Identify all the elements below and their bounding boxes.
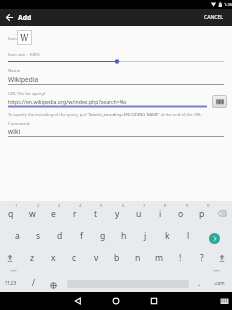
staticText: y — [115, 208, 120, 220]
button[interactable]: a — [7, 229, 27, 243]
button[interactable] — [69, 292, 87, 310]
button[interactable]: ? — [192, 251, 212, 265]
button[interactable] — [0, 55, 232, 67]
staticText: t — [94, 208, 98, 220]
button[interactable]: . — [189, 275, 209, 289]
button[interactable]: ?123 — [0, 275, 23, 289]
button[interactable]: e — [43, 207, 63, 221]
button[interactable] — [3, 9, 17, 26]
button[interactable]: f — [71, 229, 91, 243]
button[interactable]: 1 — [12, 203, 20, 209]
staticText: m — [155, 252, 164, 264]
staticText: l — [187, 230, 190, 242]
button[interactable] — [214, 250, 230, 266]
button[interactable] — [212, 95, 227, 108]
button[interactable]: 5 — [97, 203, 105, 209]
staticText: u — [136, 208, 142, 220]
staticText: URL (%s for query) — [8, 90, 46, 96]
button[interactable]: v — [86, 251, 106, 265]
button[interactable]: / — [23, 275, 43, 289]
staticText: Wikipedia — [8, 75, 39, 84]
button[interactable]: i — [150, 207, 170, 221]
button[interactable]: W — [17, 30, 32, 45]
staticText: 7 — [143, 203, 146, 209]
button[interactable]: .com — [207, 276, 231, 290]
staticText: 9 — [186, 203, 189, 209]
staticText: Name — [8, 67, 21, 73]
button[interactable]: j — [135, 229, 155, 243]
button[interactable]: h — [114, 229, 134, 243]
staticText: To specify the encoding of the query, pu… — [8, 112, 203, 118]
button[interactable]: 7 — [140, 203, 148, 209]
button[interactable]: p — [192, 207, 212, 221]
button[interactable]: x — [43, 251, 63, 265]
staticText: f — [80, 230, 83, 242]
staticText: https://en.wikipedia.org/w/index.php?sea… — [8, 98, 127, 105]
staticText: 1:26 — [224, 2, 232, 8]
staticText: 8 — [164, 203, 167, 209]
button[interactable]: n — [128, 251, 148, 265]
staticText: g — [100, 230, 106, 242]
button[interactable]: t — [86, 207, 106, 221]
button[interactable]: 3 — [55, 203, 63, 209]
staticText: n — [135, 252, 141, 264]
button[interactable]: d — [50, 229, 70, 243]
staticText: 6 — [122, 203, 125, 209]
staticText: i — [159, 208, 162, 220]
button[interactable]: b — [107, 251, 127, 265]
button[interactable]: k — [157, 229, 177, 243]
button[interactable]: o — [171, 207, 191, 221]
staticText: . — [198, 277, 201, 288]
staticText: w — [29, 208, 36, 220]
button[interactable]: w — [22, 207, 42, 221]
button[interactable] — [47, 279, 60, 292]
staticText: Icon — [8, 35, 17, 41]
button[interactable] — [107, 292, 125, 310]
staticText: 1 — [15, 203, 18, 209]
staticText: e — [51, 208, 56, 220]
staticText: p — [199, 208, 205, 220]
staticText: CANCEL — [204, 14, 223, 21]
button[interactable]: r — [65, 207, 85, 221]
staticText: / — [32, 277, 35, 288]
button[interactable]: u — [129, 207, 149, 221]
staticText: 5 — [100, 203, 103, 209]
staticText: x — [51, 252, 56, 264]
staticText: Add — [18, 13, 32, 22]
button[interactable]: 2 — [34, 203, 42, 209]
button[interactable]: ! — [170, 251, 190, 265]
staticText: j — [144, 230, 147, 242]
staticText: Icon size : 100% — [8, 51, 40, 57]
button[interactable]: 9 — [183, 203, 191, 209]
button[interactable]: c — [64, 251, 84, 265]
staticText: h — [121, 230, 127, 242]
staticText: z — [30, 252, 35, 264]
button[interactable]: 6 — [119, 203, 127, 209]
button[interactable]: s — [28, 229, 48, 243]
staticText: ?123 — [5, 279, 17, 286]
button[interactable] — [218, 292, 232, 310]
button[interactable]: CANCEL — [198, 9, 228, 26]
button[interactable]: 8 — [161, 203, 169, 209]
staticText: a — [15, 230, 20, 242]
button[interactable]: g — [93, 229, 113, 243]
staticText: Command: — [8, 120, 31, 126]
button[interactable]: m — [149, 251, 169, 265]
button[interactable] — [212, 206, 230, 221]
button[interactable]: l — [178, 229, 198, 243]
button[interactable] — [145, 292, 163, 310]
staticText: c — [72, 252, 77, 264]
button[interactable] — [2, 250, 18, 266]
staticText: 4 — [79, 203, 82, 209]
button[interactable]: 4 — [76, 203, 84, 209]
button[interactable]: y — [107, 207, 127, 221]
staticText: ! — [179, 252, 182, 264]
button[interactable]: 0 — [204, 203, 212, 209]
button[interactable]: q — [1, 207, 21, 221]
staticText: W — [20, 32, 29, 43]
button[interactable] — [209, 233, 220, 244]
button[interactable]: z — [22, 251, 42, 265]
staticText: 2 — [37, 203, 40, 209]
staticText: s — [36, 230, 41, 242]
